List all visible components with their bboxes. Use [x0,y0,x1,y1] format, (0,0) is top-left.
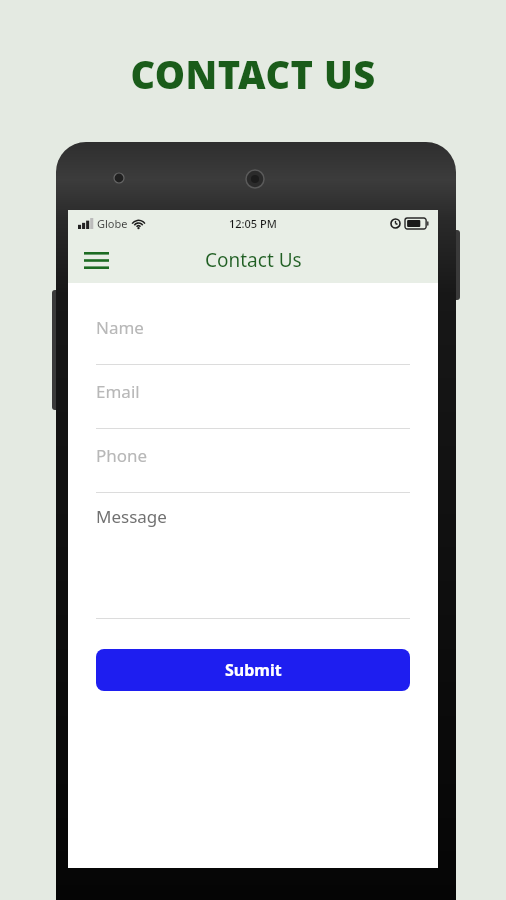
button[interactable]: Email [96,365,410,429]
button[interactable]: Message [96,493,410,619]
staticText: Submit [225,659,282,681]
button[interactable]: Open navigation menu [76,240,116,280]
staticText: Contact Us [205,247,302,273]
staticText: Message [96,505,167,528]
staticText: Phone [96,444,148,467]
button[interactable]: Name [96,301,410,365]
staticText: Globe [97,216,128,231]
staticText: Name [96,316,144,339]
button[interactable]: Phone [96,429,410,493]
staticText: 12:05 PM [229,216,277,231]
staticText: CONTACT US [130,48,376,100]
button[interactable]: Submit [96,649,410,691]
staticText: Email [96,380,140,403]
